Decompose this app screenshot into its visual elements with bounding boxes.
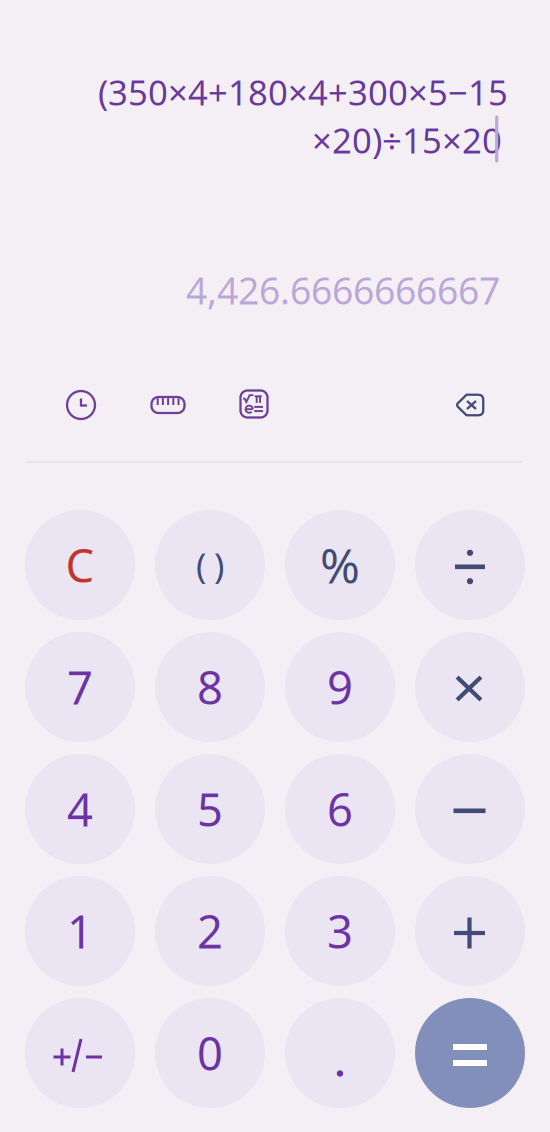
button[interactable]: History — [57, 381, 105, 429]
button[interactable]: Scientific — [230, 380, 278, 428]
staticText: (350×4+180×4+300×5−15 — [98, 69, 508, 115]
button[interactable]: Decimal point — [285, 998, 395, 1108]
button[interactable]: 5 — [155, 754, 265, 864]
button[interactable]: 1 — [25, 876, 135, 986]
button[interactable]: 2 — [155, 876, 265, 986]
staticText: 4,426.6666666667 — [186, 265, 500, 315]
button[interactable]: 6 — [285, 754, 395, 864]
staticText: 1 — [67, 901, 93, 961]
button[interactable]: 7 — [25, 632, 135, 742]
button[interactable]: Multiply — [415, 632, 525, 742]
button[interactable]: 9 — [285, 632, 395, 742]
button[interactable]: Backspace — [446, 381, 494, 429]
staticText: C — [65, 535, 94, 595]
staticText: % — [320, 533, 360, 597]
button[interactable]: % — [285, 510, 395, 620]
button[interactable]: Equals — [415, 998, 525, 1108]
button[interactable]: 0 — [155, 998, 265, 1108]
button[interactable]: Parentheses — [155, 510, 265, 620]
button[interactable]: Plus minus — [25, 998, 135, 1108]
staticText: 2 — [197, 901, 223, 961]
button[interactable]: 4 — [25, 754, 135, 864]
button[interactable]: 3 — [285, 876, 395, 986]
staticText: 8 — [197, 657, 223, 717]
staticText: ( — [196, 542, 206, 588]
staticText: 4 — [67, 779, 93, 839]
button[interactable]: Divide — [415, 510, 525, 620]
button[interactable]: 8 — [155, 632, 265, 742]
staticText: ×20)÷15×20 — [312, 117, 502, 163]
button[interactable]: Subtract — [415, 754, 525, 864]
staticText: 6 — [327, 779, 353, 839]
staticText: 0 — [197, 1023, 223, 1083]
staticText: 5 — [197, 779, 223, 839]
button[interactable]: Add — [415, 876, 525, 986]
staticText: 3 — [327, 901, 353, 961]
staticText: 9 — [327, 657, 353, 717]
staticText: 7 — [67, 657, 93, 717]
button[interactable]: Unit converter — [144, 381, 192, 429]
staticText: ) — [214, 542, 224, 588]
button[interactable]: C — [25, 510, 135, 620]
